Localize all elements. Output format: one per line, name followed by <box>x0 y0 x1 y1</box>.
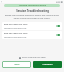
button[interactable]: Toggle <box>56 25 60 27</box>
staticText: Don't show me this again <box>22 56 46 59</box>
button[interactable]: Back <box>2 61 31 68</box>
staticText: Row one label text here <box>4 23 28 26</box>
button[interactable]: Verified connection active <box>4 4 60 7</box>
staticText: Secondary description line <box>4 27 27 29</box>
button[interactable]: Don't show me this again <box>3 56 61 59</box>
staticText: Secondary description line <box>4 36 27 38</box>
button[interactable]: Continue <box>33 61 62 68</box>
button[interactable]: Row two label text here <box>2 31 62 39</box>
staticText: Back <box>14 63 20 66</box>
staticText: Row two label text here <box>4 32 28 35</box>
staticText: Review the following diagnostic details … <box>3 14 61 20</box>
button[interactable]: Row one label text here <box>2 22 62 30</box>
staticText: Verified connection active <box>19 4 46 7</box>
button[interactable]: Toggle <box>56 34 60 36</box>
staticText: Continue <box>42 63 53 66</box>
staticText: Session Troubleshooting <box>16 9 49 13</box>
